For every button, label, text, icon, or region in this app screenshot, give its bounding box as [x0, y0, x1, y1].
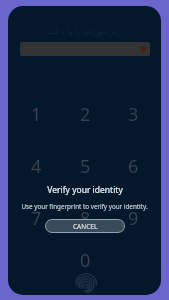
- button[interactable]: 5: [67, 148, 103, 184]
- staticText: 9: [128, 206, 139, 231]
- button[interactable]: 4: [18, 148, 54, 184]
- button[interactable]: 9: [115, 200, 151, 236]
- staticText: 7: [31, 206, 42, 231]
- staticText: 8: [80, 206, 91, 231]
- button[interactable]: 6: [115, 148, 151, 184]
- staticText: 4: [31, 154, 42, 179]
- staticText: 0: [80, 248, 91, 273]
- button[interactable]: 8: [67, 200, 103, 236]
- staticText: رمز عبور خود را وارد کنید: [48, 27, 121, 37]
- button[interactable]: Fingerprint: [74, 272, 98, 295]
- button[interactable]: [20, 42, 150, 56]
- staticText: Use your fingerprint to verify your iden…: [21, 202, 148, 211]
- staticText: 5: [80, 154, 91, 179]
- button[interactable]: 7: [18, 200, 54, 236]
- staticText: 1: [31, 102, 42, 127]
- button[interactable]: 1: [18, 96, 54, 132]
- button[interactable]: CANCEL: [45, 219, 125, 233]
- staticText: 3: [128, 102, 139, 127]
- button[interactable]: 0: [67, 242, 103, 278]
- button[interactable]: 2: [67, 96, 103, 132]
- button[interactable]: 3: [115, 96, 151, 132]
- staticText: 6: [128, 154, 139, 179]
- staticText: CANCEL: [73, 222, 98, 231]
- staticText: Verify your identity: [47, 184, 123, 196]
- staticText: 2: [80, 102, 91, 127]
